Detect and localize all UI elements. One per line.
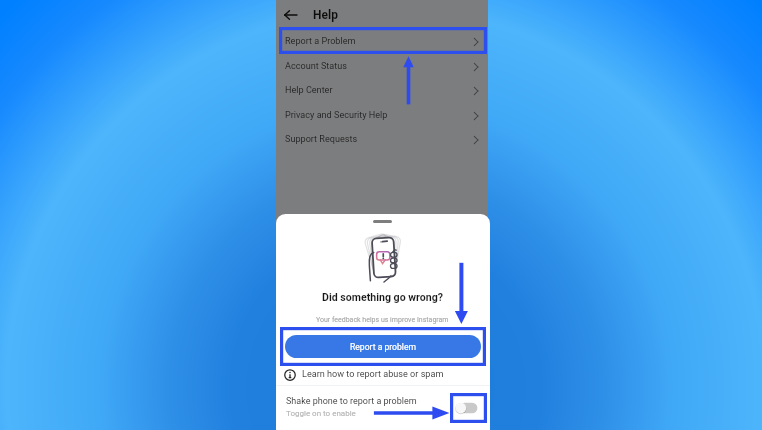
button[interactable]: Support Requests	[285, 127, 479, 152]
staticText: Did something go wrong?	[322, 291, 443, 303]
staticText: Learn how to report abuse or spam	[302, 369, 444, 380]
staticText: Your feedback helps us improve Instagram	[316, 316, 449, 324]
staticText: Report a Problem	[285, 36, 473, 47]
staticText: Support Requests	[285, 134, 473, 145]
button[interactable]: Privacy and Security Help	[285, 103, 479, 128]
staticText: Toggle on to enable	[286, 409, 356, 418]
button[interactable]: Report a Problem	[285, 29, 479, 54]
staticText: Privacy and Security Help	[285, 110, 473, 121]
button[interactable]: Shake phone to report a problem toggle	[456, 398, 480, 418]
button[interactable]: Account Status	[285, 54, 479, 79]
staticText: Account Status	[285, 61, 473, 72]
button[interactable]: Help Center	[285, 78, 479, 103]
button[interactable]: Learn how to report abuse or spam	[284, 367, 480, 382]
staticText: Report a problem	[350, 342, 417, 352]
button[interactable]: Report a problem	[285, 335, 481, 358]
staticText: Shake phone to report a problem	[286, 396, 417, 407]
button[interactable]: Back	[283, 7, 298, 22]
staticText: Help	[313, 8, 338, 22]
staticText: Help Center	[285, 85, 473, 96]
